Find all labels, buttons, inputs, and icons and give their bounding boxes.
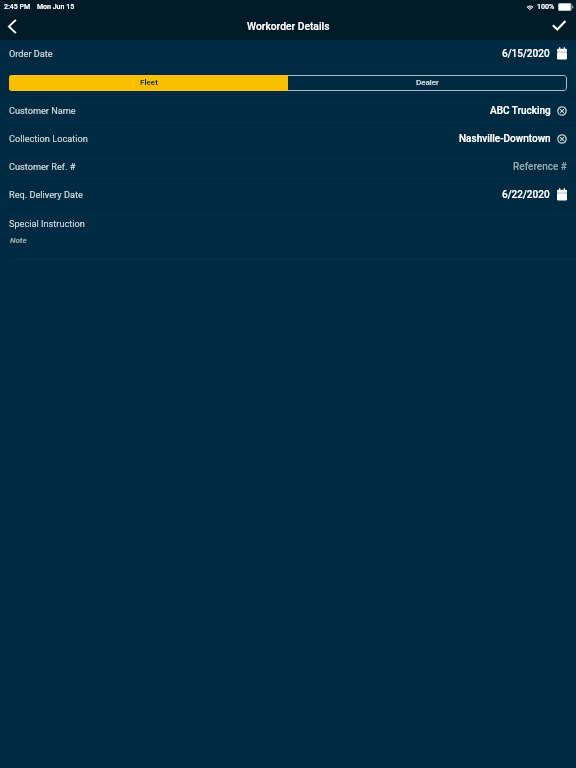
staticText: Customer Ref. # [9,161,76,172]
staticText: ABC Trucking [490,105,551,117]
button[interactable]: Dealer [288,75,567,91]
staticText: Fleet [140,78,158,87]
staticText: Collection Location [9,133,88,144]
staticText: 100% [537,3,555,11]
button[interactable]: Special Instruction [0,210,576,256]
staticText: Special Instruction [9,218,85,229]
button[interactable]: Collection Location [0,126,576,153]
staticText: Nashville-Downtown [459,133,551,145]
staticText: Dealer [416,78,439,87]
staticText: 6/15/2020 [502,48,550,60]
button[interactable]: Req. Delivery Date [0,182,576,209]
staticText: Workorder Details [247,20,330,32]
button[interactable]: Back [0,13,24,40]
staticText: 6/22/2020 [502,189,550,201]
staticText: Note [10,236,27,245]
button[interactable]: Order Date [0,40,576,67]
button[interactable]: Save [542,12,576,39]
button[interactable]: Fleet [9,75,288,91]
staticText: Reference # [513,161,567,173]
staticText: Mon Jun 15 [37,3,75,11]
staticText: 2:45 PM [4,3,31,11]
button[interactable]: Customer Ref. # [0,154,576,181]
button[interactable]: Customer Name [0,98,576,125]
staticText: Req. Delivery Date [9,189,83,200]
staticText: Customer Name [9,105,76,116]
staticText: Order Date [9,48,53,59]
